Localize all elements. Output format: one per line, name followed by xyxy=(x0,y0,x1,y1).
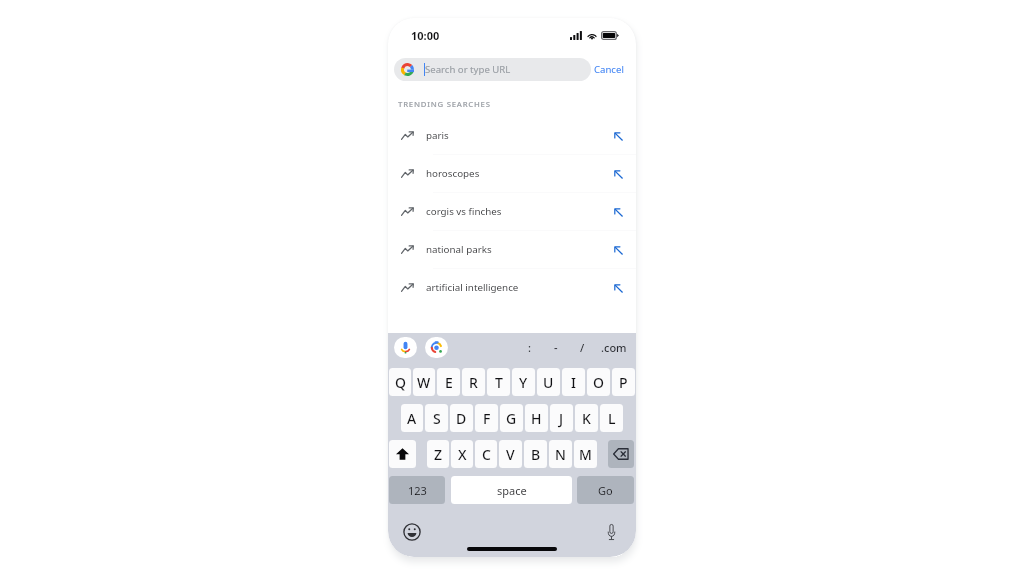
staticText: G xyxy=(506,409,517,428)
staticText: V xyxy=(506,445,515,464)
button[interactable]: Search or type URL xyxy=(394,58,591,81)
staticText: M xyxy=(579,445,592,464)
staticText: O xyxy=(593,373,604,392)
button[interactable]: Backspace xyxy=(608,440,634,468)
staticText: I xyxy=(571,373,576,392)
button[interactable]: horoscopes xyxy=(388,155,636,192)
button[interactable]: Fill query xyxy=(608,278,628,298)
button[interactable]: C xyxy=(475,440,497,468)
button[interactable]: A xyxy=(401,404,423,432)
button[interactable]: - xyxy=(542,337,569,358)
staticText: : xyxy=(528,340,531,355)
staticText: W xyxy=(417,373,431,392)
button[interactable]: G xyxy=(500,404,523,432)
staticText: 123 xyxy=(408,483,427,498)
staticText: U xyxy=(543,373,554,392)
staticText: Go xyxy=(598,483,613,498)
button[interactable]: V xyxy=(499,440,522,468)
staticText: R xyxy=(469,373,478,392)
button[interactable]: F xyxy=(475,404,498,432)
staticText: artificial intelligence xyxy=(426,281,519,294)
staticText: X xyxy=(458,445,467,464)
button[interactable]: Google Lens xyxy=(425,337,448,358)
staticText: B xyxy=(531,445,541,464)
button[interactable]: Voice search xyxy=(394,337,417,358)
staticText: TRENDING SEARCHES xyxy=(398,99,491,110)
staticText: Y xyxy=(519,373,528,392)
button[interactable]: Go xyxy=(577,476,634,504)
button[interactable]: U xyxy=(537,368,560,396)
staticText: H xyxy=(531,409,542,428)
button[interactable]: N xyxy=(549,440,572,468)
button[interactable]: H xyxy=(525,404,548,432)
button[interactable]: / xyxy=(569,337,595,358)
staticText: Cancel xyxy=(594,63,624,76)
staticText: D xyxy=(456,409,467,428)
button[interactable]: D xyxy=(450,404,473,432)
button[interactable]: M xyxy=(574,440,597,468)
button[interactable]: P xyxy=(612,368,635,396)
button[interactable]: W xyxy=(413,368,435,396)
button[interactable]: O xyxy=(587,368,610,396)
staticText: S xyxy=(433,409,441,428)
button[interactable]: Z xyxy=(427,440,449,468)
button[interactable]: K xyxy=(575,404,598,432)
button[interactable]: 123 xyxy=(389,476,445,504)
button[interactable]: Fill query xyxy=(608,126,628,146)
button[interactable]: Fill query xyxy=(608,240,628,260)
staticText: 10:00 xyxy=(411,28,440,43)
staticText: national parks xyxy=(426,243,492,256)
staticText: / xyxy=(580,340,585,355)
staticText: horoscopes xyxy=(426,167,480,180)
button[interactable]: J xyxy=(550,404,573,432)
staticText: Search or type URL xyxy=(425,63,511,76)
button[interactable]: I xyxy=(562,368,585,396)
button[interactable]: national parks xyxy=(388,231,636,268)
button[interactable]: X xyxy=(451,440,473,468)
staticText: paris xyxy=(426,129,449,142)
button[interactable]: .com xyxy=(595,337,633,358)
button[interactable]: Cancel xyxy=(594,58,632,81)
button[interactable]: Q xyxy=(389,368,411,396)
staticText: T xyxy=(495,373,503,392)
staticText: K xyxy=(582,409,591,428)
button[interactable]: Fill query xyxy=(608,164,628,184)
button[interactable]: Fill query xyxy=(608,202,628,222)
button[interactable]: E xyxy=(437,368,460,396)
button[interactable]: T xyxy=(487,368,510,396)
button[interactable]: Shift xyxy=(389,440,416,468)
staticText: - xyxy=(554,340,558,355)
staticText: E xyxy=(445,373,453,392)
button[interactable]: artificial intelligence xyxy=(388,269,636,306)
staticText: Z xyxy=(434,445,443,464)
staticText: F xyxy=(483,409,491,428)
button[interactable]: space xyxy=(451,476,572,504)
staticText: P xyxy=(619,373,628,392)
staticText: Q xyxy=(395,373,406,392)
button[interactable]: L xyxy=(600,404,623,432)
button[interactable]: B xyxy=(524,440,547,468)
button[interactable]: Emoji xyxy=(403,523,421,541)
button[interactable]: paris xyxy=(388,117,636,154)
staticText: corgis vs finches xyxy=(426,205,502,218)
staticText: L xyxy=(608,409,616,428)
staticText: C xyxy=(482,445,491,464)
button[interactable]: S xyxy=(425,404,448,432)
staticText: space xyxy=(497,483,527,498)
button[interactable]: : xyxy=(516,337,542,358)
staticText: A xyxy=(407,409,417,428)
button[interactable]: R xyxy=(462,368,485,396)
button[interactable]: Y xyxy=(512,368,535,396)
button[interactable]: Voice input xyxy=(606,523,617,541)
staticText: .com xyxy=(601,340,627,355)
staticText: N xyxy=(555,445,566,464)
staticText: J xyxy=(559,409,564,428)
button[interactable]: corgis vs finches xyxy=(388,193,636,230)
